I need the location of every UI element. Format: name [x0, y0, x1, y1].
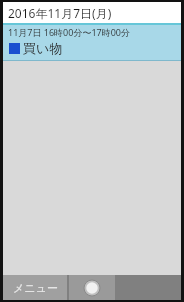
button[interactable]: 11月7日 16時00分〜17時00分 [3, 25, 181, 60]
button[interactable]: メニュー [3, 275, 67, 300]
button[interactable]: 2016年11月7日(月) [3, 2, 181, 23]
staticText: 2016年11月7日(月) [8, 5, 112, 21]
staticText: 買い物 [23, 40, 63, 56]
staticText: 11月7日 16時00分〜17時00分 [8, 26, 130, 38]
button[interactable]: Home [69, 275, 115, 300]
staticText: メニュー [13, 281, 58, 295]
